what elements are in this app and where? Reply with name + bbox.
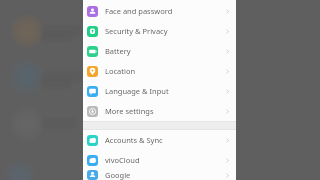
button[interactable]: Face and password [83,1,236,21]
other: Open Security & Privacy [224,28,231,35]
staticText: Google [105,170,131,180]
button[interactable]: More settings [83,101,236,121]
staticText: Location [105,66,136,76]
other: Open Accounts & Sync [224,137,231,144]
other: Open More settings [224,108,231,115]
staticText: Battery [105,46,131,56]
button[interactable]: Google [83,170,236,180]
staticText: Face and password [105,6,173,16]
staticText: Language & Input [105,86,169,96]
staticText: Accounts & Sync [105,135,163,145]
staticText: Security & Privacy [105,26,168,36]
other: Open Battery [224,48,231,55]
button[interactable]: Accounts & Sync [83,130,236,150]
other: Open Location [224,68,231,75]
button[interactable]: vivoCloud [83,150,236,170]
other: Open Google [224,172,231,179]
button[interactable]: Location [83,61,236,81]
staticText: vivoCloud [105,155,140,165]
button[interactable]: Battery [83,41,236,61]
button[interactable]: Language & Input [83,81,236,101]
other: Open vivoCloud [224,157,231,164]
button[interactable]: Security & Privacy [83,21,236,41]
other: Open Language & Input [224,88,231,95]
staticText: More settings [105,106,154,116]
other: Open Face and password [224,8,231,15]
